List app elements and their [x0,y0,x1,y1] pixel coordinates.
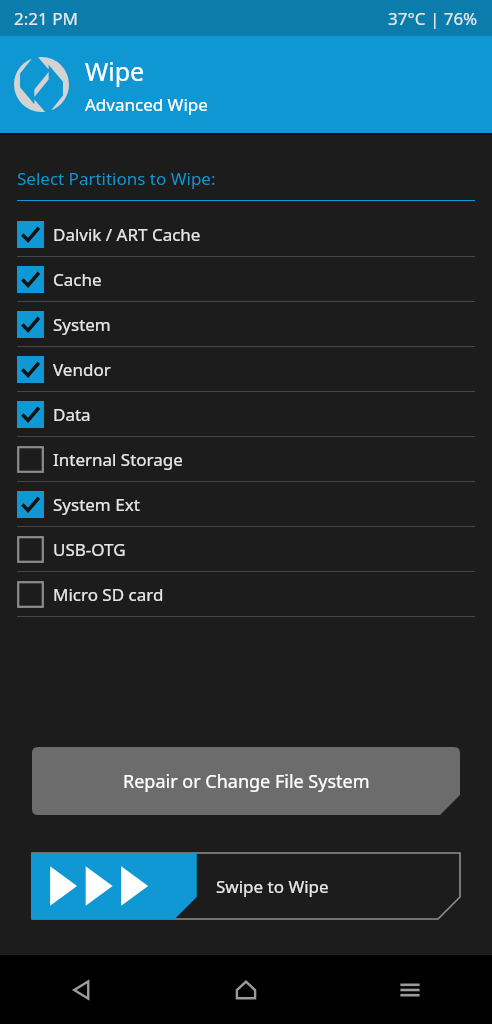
staticText: 37°C | 76% [388,7,478,30]
staticText: System [53,313,111,336]
staticText: Cache [53,268,102,291]
button[interactable]: Internal Storage [0,437,492,481]
button[interactable]: System Ext [0,482,492,526]
button[interactable]: Vendor [0,347,492,391]
staticText: 2:21 PM [14,7,78,30]
staticText: Dalvik / ART Cache [53,223,201,246]
staticText: Micro SD card [53,583,164,606]
button[interactable]: System [0,302,492,346]
button[interactable]: USB-OTG [0,527,492,571]
staticText: Select Partitions to Wipe: [17,167,216,190]
button[interactable]: TWRP [0,36,492,133]
button[interactable]: Repair or Change File System [32,747,460,815]
button[interactable]: Data [0,392,492,436]
button[interactable]: Back [0,955,164,1024]
staticText: System Ext [53,493,140,516]
staticText: USB-OTG [53,538,126,561]
button[interactable]: Swipe to Wipe [32,853,460,919]
button[interactable]: Home [164,955,328,1024]
staticText: Wipe [85,54,145,88]
other: TWRP [14,57,69,112]
staticText: Internal Storage [53,448,183,471]
button[interactable]: Dalvik / ART Cache [0,212,492,256]
staticText: Swipe to Wipe [216,875,329,898]
button[interactable]: Cache [0,257,492,301]
staticText: Vendor [53,358,111,381]
staticText: Data [53,403,91,426]
button[interactable]: Menu [328,955,492,1024]
staticText: Advanced Wipe [85,93,208,116]
staticText: Repair or Change File System [123,769,370,794]
button[interactable]: Micro SD card [0,572,492,616]
